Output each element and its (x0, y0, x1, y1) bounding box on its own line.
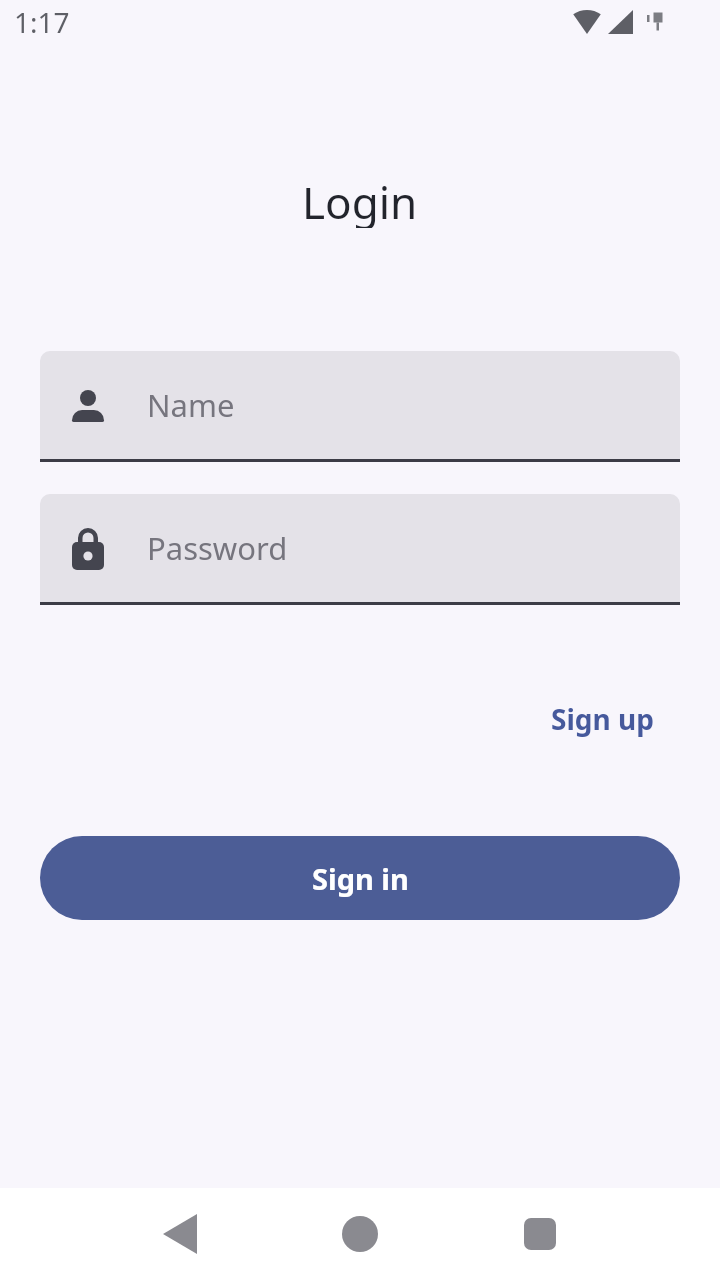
button[interactable] (524, 1218, 556, 1250)
button[interactable]: Sign in (40, 836, 680, 920)
staticText: Login (302, 172, 418, 228)
button[interactable]: Password (40, 494, 680, 602)
button[interactable] (163, 1214, 197, 1254)
staticText: Sign up (551, 700, 654, 738)
staticText: 1:17 (14, 3, 70, 41)
button[interactable]: Name (40, 351, 680, 459)
button[interactable]: Sign up (551, 700, 654, 738)
staticText: Password (147, 527, 288, 569)
staticText: Name (147, 384, 235, 426)
staticText: Sign in (312, 859, 409, 898)
button[interactable] (342, 1216, 378, 1252)
